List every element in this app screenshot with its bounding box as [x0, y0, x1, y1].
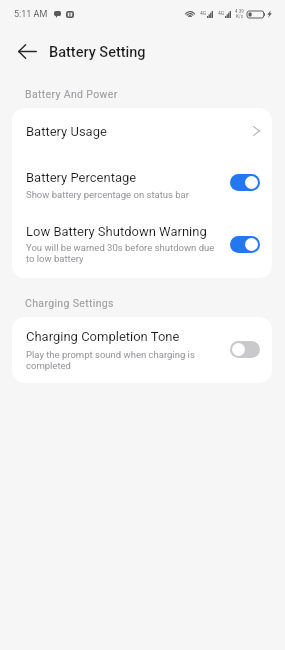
staticText: Play the prompt sound when charging is c… [26, 349, 222, 371]
staticText: Battery And Power [25, 88, 118, 100]
staticText: Show battery percentage on status bar [26, 189, 189, 200]
staticText: Charging Settings [25, 297, 114, 309]
staticText: Battery Usage [26, 124, 107, 139]
button[interactable]: Turn off [230, 236, 260, 253]
staticText: K/s [236, 14, 244, 19]
staticText: 4G [218, 10, 225, 16]
staticText: Battery Setting [49, 44, 146, 61]
button[interactable]: Battery Usage [12, 108, 272, 154]
staticText: Battery Percentage [26, 170, 137, 185]
button[interactable]: Turn off [230, 174, 260, 191]
button[interactable]: Battery Percentage [12, 154, 272, 212]
button[interactable]: Turn on [230, 341, 260, 358]
button[interactable]: Low Battery Shutdown Warning [12, 212, 272, 278]
staticText: Charging Completion Tone [26, 329, 180, 344]
staticText: Low Battery Shutdown Warning [26, 224, 207, 239]
staticText: You will be warned 30s before shutdown d… [26, 242, 222, 264]
button[interactable]: Back [11, 35, 43, 67]
staticText: 4.39 [235, 9, 244, 14]
staticText: 5:11 AM [14, 9, 48, 20]
button[interactable]: Charging Completion Tone [12, 317, 272, 383]
staticText: 4G [200, 10, 207, 16]
